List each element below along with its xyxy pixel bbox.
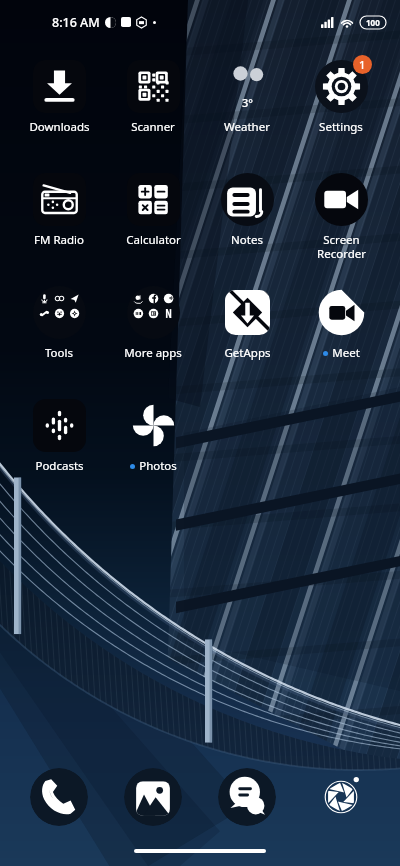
staticText: Podcasts — [35, 458, 84, 474]
staticText: Downloads — [29, 119, 90, 135]
staticText: Tools — [45, 345, 73, 361]
button[interactable]: Scanner — [122, 55, 184, 135]
staticText: Weather — [224, 119, 270, 135]
button[interactable]: Gallery — [124, 768, 182, 826]
button[interactable]: Podcasts — [28, 394, 90, 474]
staticText: Photos — [139, 458, 177, 474]
button[interactable]: 3° — [216, 55, 278, 135]
staticText: GetApps — [224, 345, 271, 361]
button[interactable]: FM Radio — [28, 168, 90, 248]
button[interactable]: Tools — [28, 281, 90, 361]
staticText: 100 — [366, 17, 380, 28]
button[interactable]: Calculator — [122, 168, 184, 248]
button[interactable]: Photos — [122, 394, 184, 474]
staticText: More apps — [124, 345, 182, 361]
staticText: FM Radio — [34, 232, 84, 248]
staticText: 1 — [359, 57, 366, 72]
button[interactable]: Screen Recorder — [310, 168, 372, 261]
button[interactable]: Camera — [312, 768, 370, 826]
button[interactable]: Phone — [30, 768, 88, 826]
button[interactable]: Notes — [216, 168, 278, 248]
button[interactable]: Meet — [310, 281, 372, 361]
staticText: 8:16 AM — [52, 14, 100, 31]
staticText: Notes — [231, 232, 263, 248]
staticText: Meet — [332, 345, 360, 361]
button[interactable]: Messages — [218, 768, 276, 826]
staticText: Settings — [319, 119, 363, 135]
button[interactable]: More apps — [122, 281, 184, 361]
button[interactable]: GetApps — [216, 281, 278, 361]
staticText: Screen Recorder — [317, 232, 366, 261]
staticText: 3° — [242, 95, 253, 110]
staticText: Scanner — [131, 119, 175, 135]
button[interactable]: Downloads — [28, 55, 90, 135]
button[interactable]: 1 — [310, 55, 372, 135]
staticText: Calculator — [126, 232, 181, 248]
